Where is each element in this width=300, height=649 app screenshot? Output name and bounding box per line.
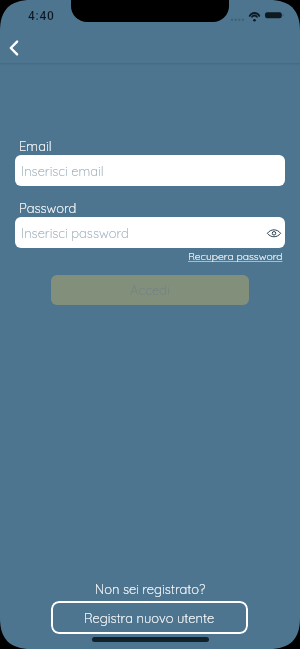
button[interactable]: Recupera password [188, 250, 283, 263]
staticText: Inserisci email [21, 163, 104, 179]
staticText: Inserisci password [21, 225, 129, 241]
staticText: Password [19, 200, 77, 216]
staticText: Recupera password [188, 250, 283, 263]
staticText: Accedi [130, 282, 170, 298]
button[interactable]: Inserisci password [15, 217, 285, 248]
staticText: 4:40 [28, 9, 55, 23]
button[interactable]: Inserisci email [15, 155, 285, 186]
staticText: Non sei registrato? [0, 581, 300, 597]
button[interactable]: Back [6, 36, 32, 60]
button[interactable]: Registra nuovo utente [51, 601, 248, 634]
staticText: Email [19, 138, 52, 154]
staticText: Registra nuovo utente [84, 610, 215, 626]
button[interactable]: Show password [264, 223, 284, 243]
button[interactable]: Accedi [51, 275, 249, 305]
